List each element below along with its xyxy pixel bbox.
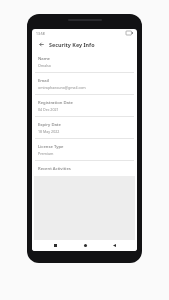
staticText: Registration Date bbox=[38, 100, 73, 106]
button[interactable]: Expiry Date bbox=[32, 117, 137, 138]
staticText: Email bbox=[38, 78, 49, 84]
staticText: Recent Activities bbox=[38, 166, 71, 172]
button[interactable]: Registration Date bbox=[32, 95, 137, 116]
button[interactable]: Home bbox=[79, 240, 91, 251]
button[interactable]: Email bbox=[32, 73, 137, 94]
button[interactable]: Back bbox=[108, 240, 120, 251]
button[interactable]: License Type bbox=[32, 139, 137, 160]
button[interactable]: Recents bbox=[49, 240, 61, 251]
staticText: 04 Dec 2021 bbox=[38, 107, 59, 112]
staticText: omiraphaexuno@gmail.com bbox=[38, 85, 86, 90]
staticText: Name bbox=[38, 56, 51, 62]
staticText: 18 May 2022 bbox=[38, 129, 60, 134]
staticText: Security Key Info bbox=[49, 41, 95, 48]
staticText: Expiry Date bbox=[38, 122, 61, 128]
staticText: License Type bbox=[38, 144, 64, 150]
staticText: Omalso bbox=[38, 63, 52, 68]
button[interactable]: Name bbox=[32, 51, 137, 72]
button[interactable]: Back bbox=[36, 39, 46, 49]
button[interactable]: Recent Activities bbox=[32, 161, 137, 176]
staticText: 13:58 bbox=[36, 31, 45, 36]
staticText: Premium bbox=[38, 151, 54, 156]
